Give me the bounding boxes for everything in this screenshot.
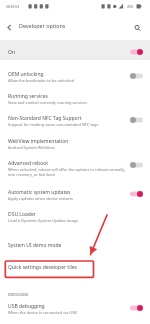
- button[interactable]: Quick settings developer tiles: [0, 258, 150, 284]
- staticText: Apply updates when device restarts: [8, 196, 73, 201]
- button[interactable]: Automatic system updates: [0, 183, 150, 205]
- staticText: Developer options: [19, 22, 66, 29]
- button[interactable]: System UI demo mode: [0, 236, 150, 258]
- staticText: Quick settings developer tiles: [8, 264, 77, 271]
- staticText: When unlocked, reboot will offer the opt…: [8, 167, 126, 177]
- staticText: Load a Dynamic System Update image: [8, 218, 79, 223]
- button[interactable]: DSU Loader: [0, 205, 150, 236]
- staticText: Automatic system updates: [8, 189, 71, 196]
- button[interactable]: OEM unlocking: [0, 60, 150, 87]
- staticText: System UI demo mode: [8, 242, 62, 249]
- staticText: WebView implementation: [8, 138, 69, 145]
- button[interactable]: Back: [0, 13, 19, 40]
- staticText: Advanced reboot: [8, 160, 49, 167]
- button[interactable]: USB debugging: [0, 297, 150, 319]
- staticText: DSU Loader: [8, 211, 36, 218]
- button[interactable]: Running services: [0, 87, 150, 109]
- staticText: Allow the bootloader to be unlocked: [8, 78, 75, 83]
- staticText: Non-Standard NFC Tag Support: [8, 115, 82, 122]
- staticText: OEM unlocking: [8, 71, 44, 78]
- button[interactable]: Advanced reboot: [0, 154, 150, 183]
- button[interactable]: Search: [128, 13, 150, 40]
- button[interactable]: WebView implementation: [0, 132, 150, 154]
- staticText: Android System WebView: [8, 145, 55, 150]
- staticText: Support for reading some non-standard NF…: [8, 122, 99, 127]
- staticText: USB debugging: [8, 303, 45, 310]
- staticText: 08:29:53: [6, 4, 20, 8]
- button[interactable]: Non-Standard NFC Tag Support: [0, 109, 150, 132]
- staticText: DEBUGGING: [8, 292, 29, 297]
- staticText: Running services: [8, 93, 48, 100]
- button[interactable]: On: [0, 40, 150, 60]
- staticText: 45%: [127, 4, 134, 8]
- staticText: When the device is connected via USB: [8, 310, 77, 315]
- staticText: On: [8, 49, 15, 56]
- staticText: View and control currently running servi…: [8, 100, 88, 105]
